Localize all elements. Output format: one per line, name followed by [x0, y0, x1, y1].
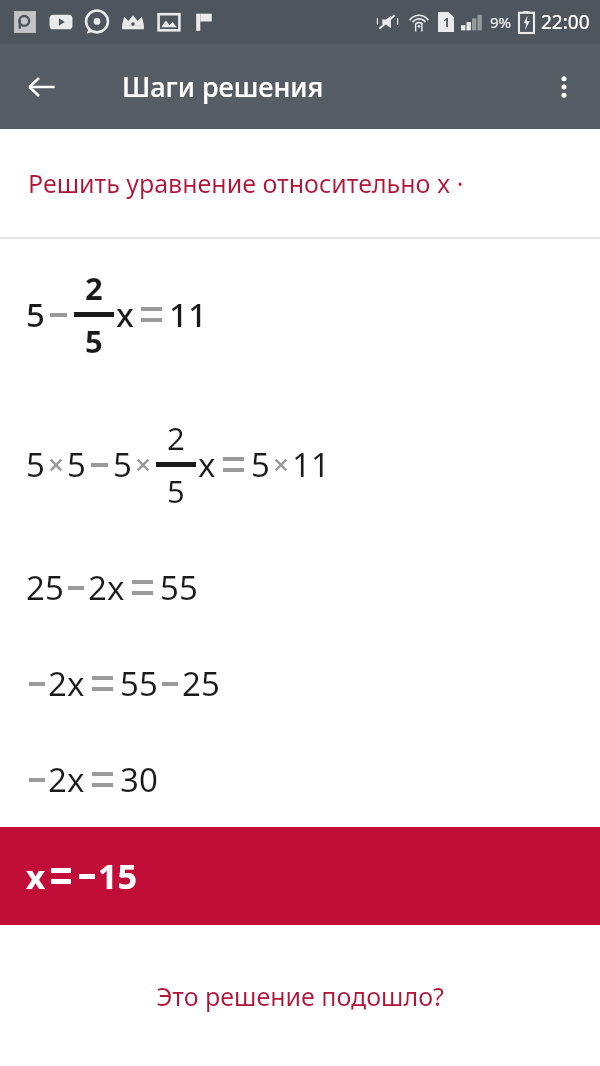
staticText: 5: [251, 442, 270, 487]
staticText: x: [116, 292, 134, 337]
button[interactable]: 2x: [0, 731, 600, 827]
staticText: 30: [120, 757, 158, 802]
staticText: Шаги решения: [122, 68, 324, 105]
button[interactable]: 25: [0, 539, 600, 635]
button[interactable]: Это решение подошло?: [0, 926, 600, 1066]
staticText: x: [26, 854, 46, 899]
staticText: 9%: [490, 12, 512, 32]
staticText: 2x: [88, 565, 125, 610]
staticText: 2x: [48, 757, 85, 802]
staticText: 5: [26, 442, 45, 487]
staticText: Решить уравнение относительно x ·: [28, 166, 464, 200]
staticText: 2: [85, 267, 103, 309]
staticText: Это решение подошло?: [156, 979, 444, 1013]
staticText: 2: [167, 417, 185, 459]
staticText: 5: [67, 442, 86, 487]
staticText: 1: [443, 14, 450, 30]
staticText: 55: [120, 661, 158, 706]
staticText: 22:00: [541, 9, 590, 35]
staticText: 5: [26, 292, 45, 337]
staticText: 2x: [48, 661, 85, 706]
staticText: 5: [167, 470, 185, 512]
staticText: 11: [292, 442, 330, 487]
button[interactable]: x: [0, 827, 600, 925]
staticText: 25: [182, 661, 220, 706]
staticText: 11: [169, 292, 207, 337]
button[interactable]: 5: [0, 239, 600, 389]
button[interactable]: More options: [538, 61, 590, 113]
staticText: 55: [160, 565, 198, 610]
staticText: 5: [85, 320, 103, 362]
button[interactable]: Back: [14, 59, 70, 115]
staticText: 25: [26, 565, 64, 610]
staticText: x: [198, 442, 216, 487]
staticText: 5: [113, 442, 132, 487]
staticText: 15: [98, 853, 137, 899]
button[interactable]: 2x: [0, 635, 600, 731]
button[interactable]: 5: [0, 389, 600, 539]
